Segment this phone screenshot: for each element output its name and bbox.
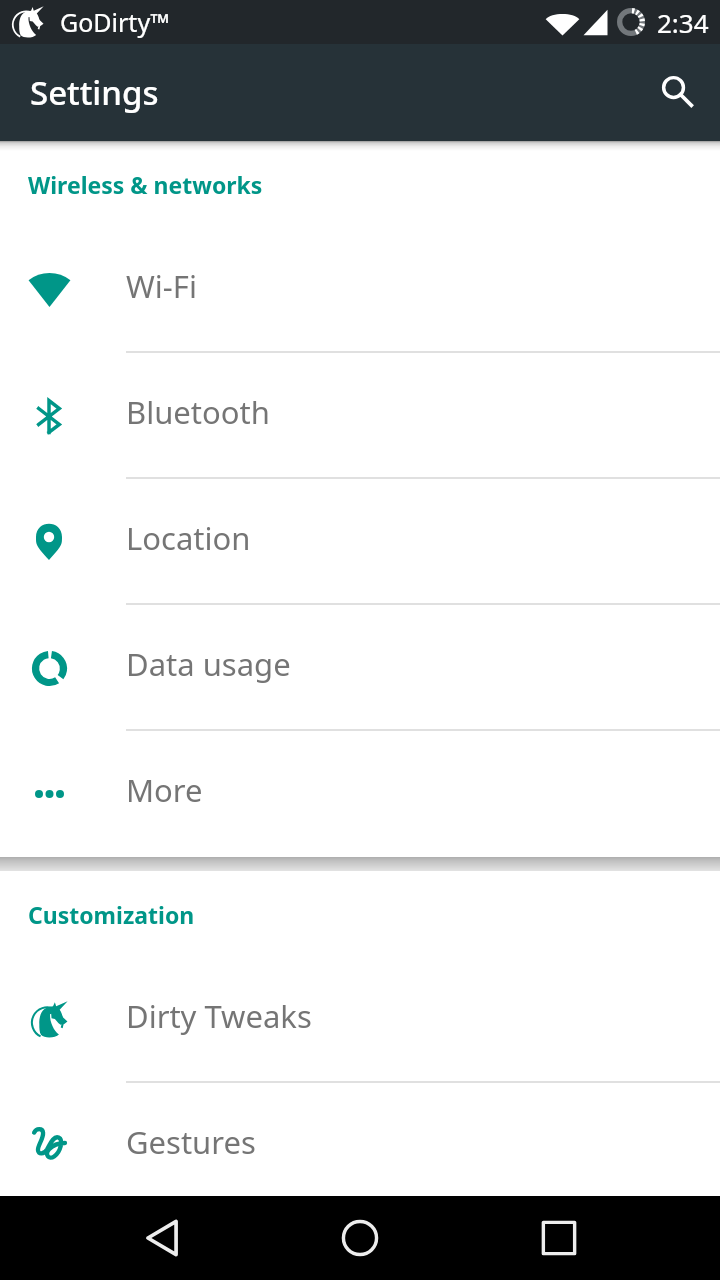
button[interactable]: Data usage — [0, 605, 720, 731]
button[interactable]: Gestures — [0, 1083, 720, 1196]
staticText: Bluetooth — [126, 391, 270, 433]
button[interactable]: More — [0, 731, 720, 857]
staticText: 2:34 — [657, 5, 709, 40]
staticText: More — [126, 769, 203, 811]
button[interactable]: Recents — [519, 1198, 599, 1278]
other: Wi-Fi signal — [545, 9, 580, 37]
other: Battery — [617, 8, 645, 36]
staticText: GoDirty™ — [60, 5, 170, 39]
other: Mobile signal — [583, 9, 608, 36]
other: GoDirty logo — [12, 6, 44, 38]
staticText: Wireless & networks — [28, 169, 263, 200]
staticText: Customization — [28, 899, 195, 930]
staticText: Dirty Tweaks — [126, 995, 312, 1037]
button[interactable]: Back — [122, 1198, 202, 1278]
button[interactable]: Bluetooth — [0, 353, 720, 479]
button[interactable]: Search — [647, 61, 707, 121]
staticText: Wi-Fi — [126, 265, 197, 307]
staticText: Data usage — [126, 643, 291, 685]
staticText: Settings — [30, 70, 159, 115]
staticText: Location — [126, 517, 251, 559]
button[interactable]: Wi-Fi — [0, 227, 720, 353]
button[interactable]: Home — [320, 1198, 400, 1278]
button[interactable]: Dirty Tweaks — [0, 957, 720, 1083]
staticText: Gestures — [126, 1121, 256, 1163]
button[interactable]: Location — [0, 479, 720, 605]
